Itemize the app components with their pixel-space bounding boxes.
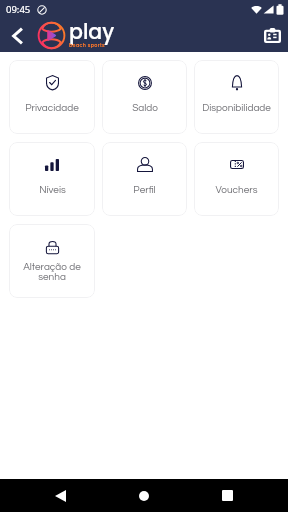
staticText: Alteração de senha — [23, 262, 81, 282]
staticText: 09:45 — [6, 3, 31, 16]
button[interactable]: Privacidade — [9, 60, 95, 134]
button[interactable]: Perfil — [102, 142, 187, 216]
button[interactable]: Home — [128, 479, 160, 512]
button[interactable]: Back — [44, 479, 76, 512]
button[interactable]: Back — [7, 26, 27, 46]
button[interactable]: Vouchers — [194, 142, 279, 216]
staticText: Perfil — [133, 185, 156, 195]
staticText: Disponibilidade — [202, 103, 271, 113]
staticText: Níveis — [39, 185, 66, 195]
button[interactable]: Recents — [211, 479, 243, 512]
button[interactable]: Alteração de senha — [9, 224, 95, 298]
button[interactable]: Níveis — [9, 142, 95, 216]
staticText: beach sports — [69, 42, 105, 49]
staticText: play — [69, 17, 115, 46]
staticText: Saldo — [132, 103, 158, 113]
button[interactable]: Saldo — [102, 60, 187, 134]
staticText: Privacidade — [25, 103, 79, 113]
button[interactable]: Disponibilidade — [194, 60, 279, 134]
staticText: Vouchers — [215, 185, 258, 195]
button[interactable]: Profile card — [260, 23, 284, 47]
